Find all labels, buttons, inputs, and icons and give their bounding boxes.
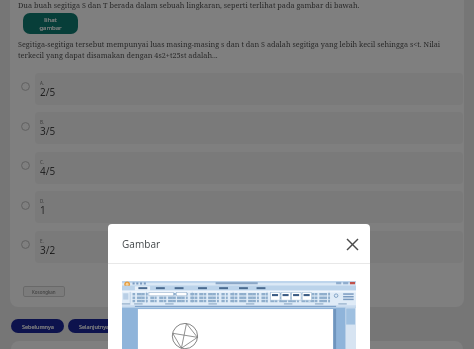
button[interactable]: A. (35, 73, 463, 105)
button[interactable]: Selanjutnya (68, 319, 121, 333)
staticText: Selanjutnya (79, 323, 110, 330)
staticText: Dua buah segitiga S dan T berada dalam s… (18, 0, 468, 10)
staticText: lihat gambar (39, 16, 62, 32)
button[interactable]: Pilih D. (21, 201, 30, 210)
button[interactable]: C. (35, 152, 463, 184)
button[interactable]: Sebelumnya (11, 319, 64, 333)
staticText: E. (40, 238, 44, 244)
button[interactable]: Pilih B. (21, 122, 30, 131)
button[interactable]: Pilih E. (21, 240, 30, 249)
staticText: 1 (40, 203, 46, 217)
button[interactable]: Kosongkan (23, 286, 65, 297)
staticText: Sebelumnya (22, 323, 54, 330)
button[interactable]: Pilih C. (21, 161, 30, 170)
staticText: C. (40, 159, 45, 165)
button[interactable]: Pilih A. (21, 82, 30, 91)
staticText: Segitiga-segitiga tersebut mempunyai lua… (18, 39, 468, 60)
button[interactable]: lihat gambar (23, 13, 78, 34)
button[interactable]: Tutup (341, 233, 363, 255)
staticText: Kosongkan (32, 289, 56, 295)
staticText: 4/5 (40, 164, 56, 178)
button[interactable]: B. (35, 112, 463, 144)
staticText: 3/2 (40, 243, 56, 257)
staticText: D. (40, 198, 45, 204)
staticText: A. (40, 80, 45, 86)
button[interactable]: E. (35, 231, 463, 263)
staticText: B. (40, 119, 45, 125)
staticText: 3/5 (40, 124, 56, 138)
staticText: Gambar (122, 237, 161, 251)
staticText: 2/5 (40, 85, 56, 99)
